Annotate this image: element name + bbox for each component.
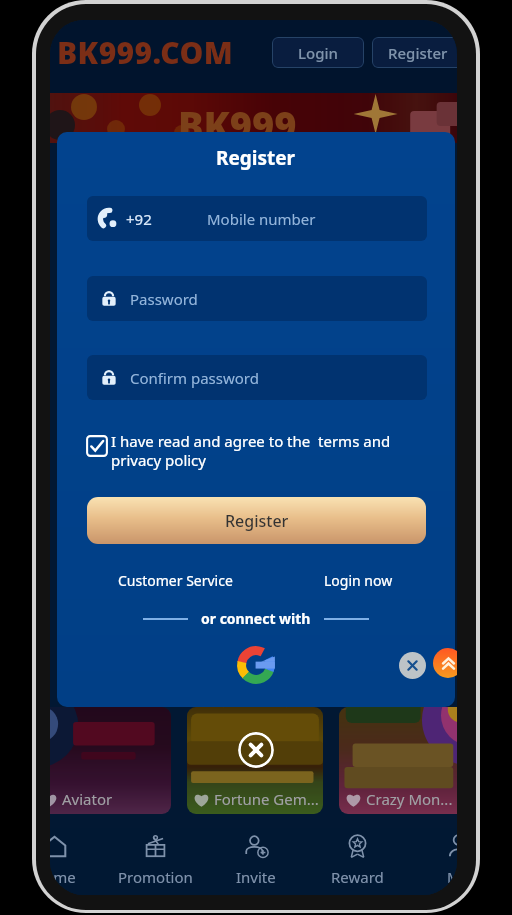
staticText: Aviator — [62, 789, 113, 809]
staticText: Register — [216, 145, 296, 171]
button[interactable]: Register — [87, 497, 426, 544]
button[interactable]: Login — [272, 37, 364, 68]
staticText: Crazy Mon... — [366, 789, 453, 809]
staticText: +92 — [126, 209, 152, 229]
button[interactable]: Invite — [206, 833, 306, 891]
button[interactable]: Promotion — [105, 833, 205, 891]
staticText: BK999.COM — [57, 32, 234, 73]
button[interactable]: Customer Service — [118, 571, 233, 590]
staticText: Confirm password — [130, 368, 259, 388]
button[interactable]: Login now — [324, 571, 393, 590]
staticText: Invite — [236, 867, 276, 887]
staticText: Register — [388, 43, 448, 63]
staticText: Fortune Gem... — [214, 789, 319, 809]
staticText: Promotion — [118, 867, 193, 887]
button[interactable]: Fortune Gem... — [187, 707, 323, 814]
button[interactable]: Reward — [307, 833, 407, 891]
staticText: Me — [447, 867, 457, 887]
staticText: Password — [130, 289, 198, 309]
staticText: or connect with — [201, 609, 311, 628]
button[interactable]: Register — [372, 37, 457, 68]
button[interactable]: Close — [399, 652, 426, 679]
button[interactable]: Crazy Mon... — [339, 707, 457, 814]
button[interactable]: Me — [408, 833, 457, 891]
staticText: Login now — [324, 571, 393, 590]
button[interactable]: Home — [50, 833, 104, 891]
staticText: Reward — [331, 867, 384, 887]
staticText: BK999 — [178, 99, 297, 149]
staticText: Home — [50, 867, 76, 887]
staticText: Register — [225, 510, 289, 532]
button[interactable]: +92 — [87, 196, 427, 241]
button[interactable]: Password — [87, 276, 427, 321]
button[interactable]: Scroll to top — [433, 648, 457, 678]
button[interactable]: Dismiss — [238, 732, 274, 768]
button[interactable]: Aviator — [50, 707, 171, 814]
button[interactable]: Sign in with Google — [235, 644, 277, 686]
button[interactable]: I have read and agree to the terms and p… — [86, 431, 426, 471]
staticText: Login — [298, 43, 338, 63]
staticText: Mobile number — [207, 209, 316, 229]
staticText: I have read and agree to the terms and p… — [111, 431, 426, 471]
button[interactable]: Confirm password — [87, 355, 427, 400]
staticText: Customer Service — [118, 571, 233, 590]
